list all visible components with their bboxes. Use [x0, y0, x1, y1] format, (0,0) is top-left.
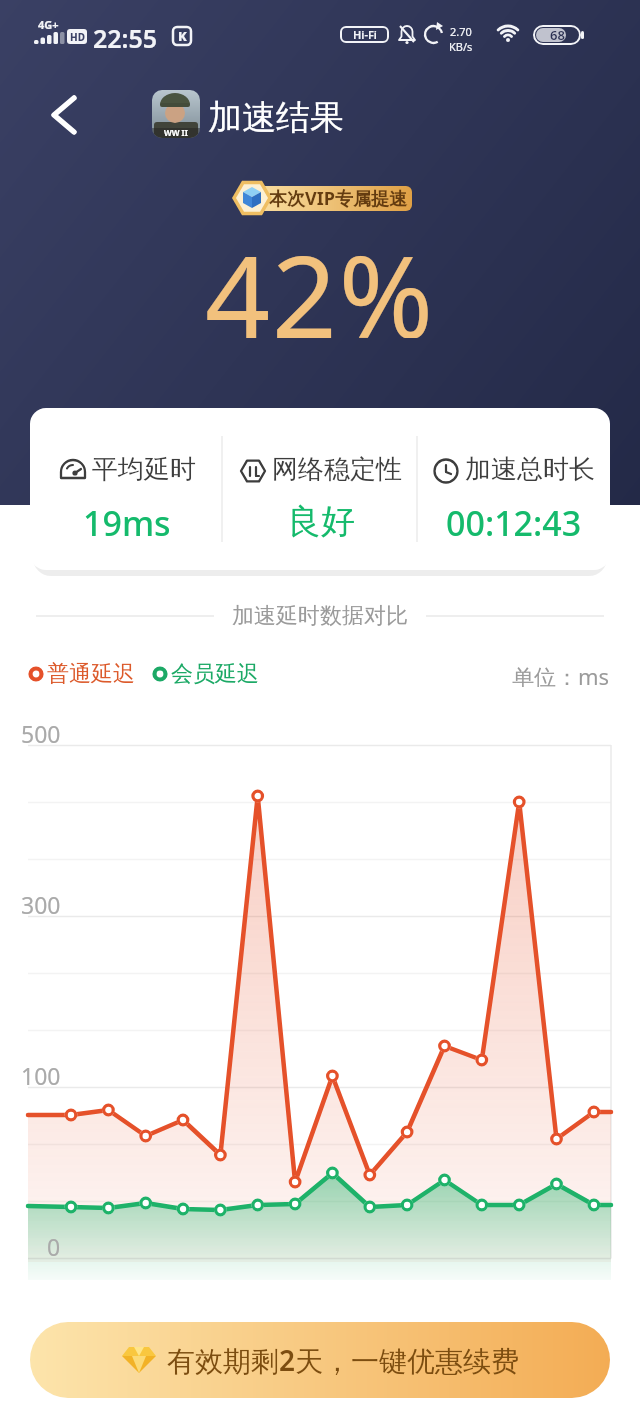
staticText: 网络稳定性 [272, 453, 402, 486]
staticText: 0 [47, 1231, 61, 1261]
staticText: 普通延迟 [47, 660, 135, 688]
staticText: HD [70, 30, 85, 44]
staticText: 单位：ms [512, 661, 610, 687]
staticText: 00:12:43 [446, 500, 582, 546]
staticText: 2.70 [450, 24, 472, 39]
staticText: K [178, 27, 187, 45]
staticText: 100 [21, 1060, 61, 1090]
staticText: 加速延时数据对比 [232, 602, 408, 630]
button[interactable]: 平均延时 [30, 408, 224, 570]
staticText: 加速结果 [208, 96, 344, 136]
button[interactable] [38, 88, 88, 142]
staticText: Hi-Fi [353, 27, 377, 42]
button[interactable]: 有效期剩2天，一键优惠续费 [30, 1322, 610, 1398]
staticText: 500 [21, 718, 61, 748]
button[interactable]: 网络稳定性 [224, 408, 417, 570]
staticText: 19ms [83, 500, 171, 546]
staticText: 会员延迟 [171, 660, 259, 688]
button[interactable]: 加速总时长 [417, 408, 610, 570]
staticText: 有效期剩2天，一键优惠续费 [167, 1341, 520, 1379]
staticText: 良好 [287, 500, 355, 543]
staticText: 22:55 [93, 21, 158, 51]
staticText: 平均延时 [92, 453, 196, 486]
staticText: 本次VIP专属提速 [269, 186, 407, 211]
staticText: 300 [21, 889, 61, 919]
staticText: 4G+ [38, 17, 59, 30]
staticText: 加速总时长 [465, 453, 595, 486]
staticText: 42% [205, 216, 435, 338]
staticText: 68 [550, 26, 565, 44]
staticText: KB/s [449, 39, 473, 54]
staticText: WW II [164, 127, 188, 138]
